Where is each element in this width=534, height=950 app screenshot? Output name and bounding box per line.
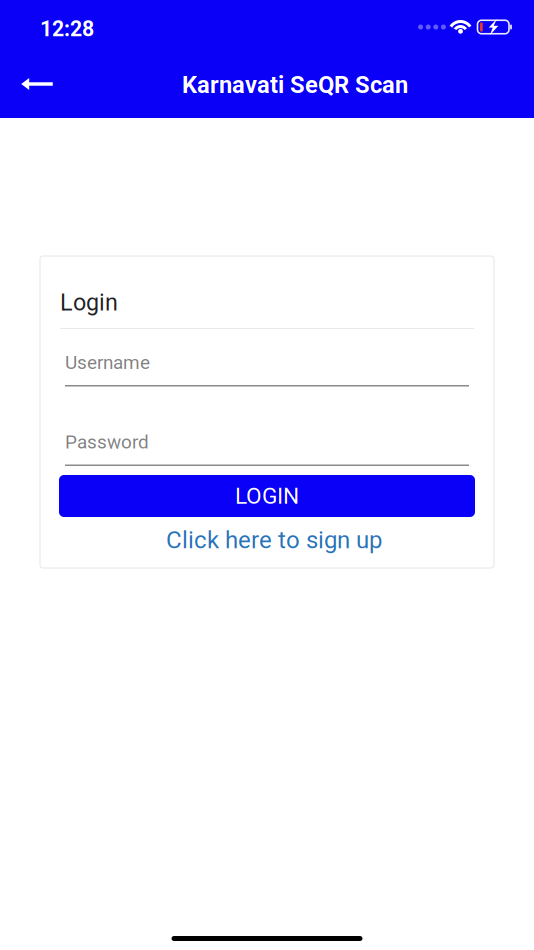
button[interactable]: Password (65, 435, 469, 466)
staticText: Click here to sign up (166, 526, 382, 554)
button[interactable]: Click here to sign up (40, 528, 494, 552)
button[interactable]: Back (11, 62, 63, 106)
staticText: Login (60, 289, 118, 316)
staticText: LOGIN (235, 483, 299, 509)
staticText: Username (65, 351, 150, 374)
button[interactable]: LOGIN (59, 475, 475, 517)
button[interactable]: Username (65, 356, 469, 386)
staticText: 12:28 (40, 16, 94, 41)
staticText: Password (65, 431, 149, 453)
staticText: Karnavati SeQR Scan (182, 71, 408, 99)
